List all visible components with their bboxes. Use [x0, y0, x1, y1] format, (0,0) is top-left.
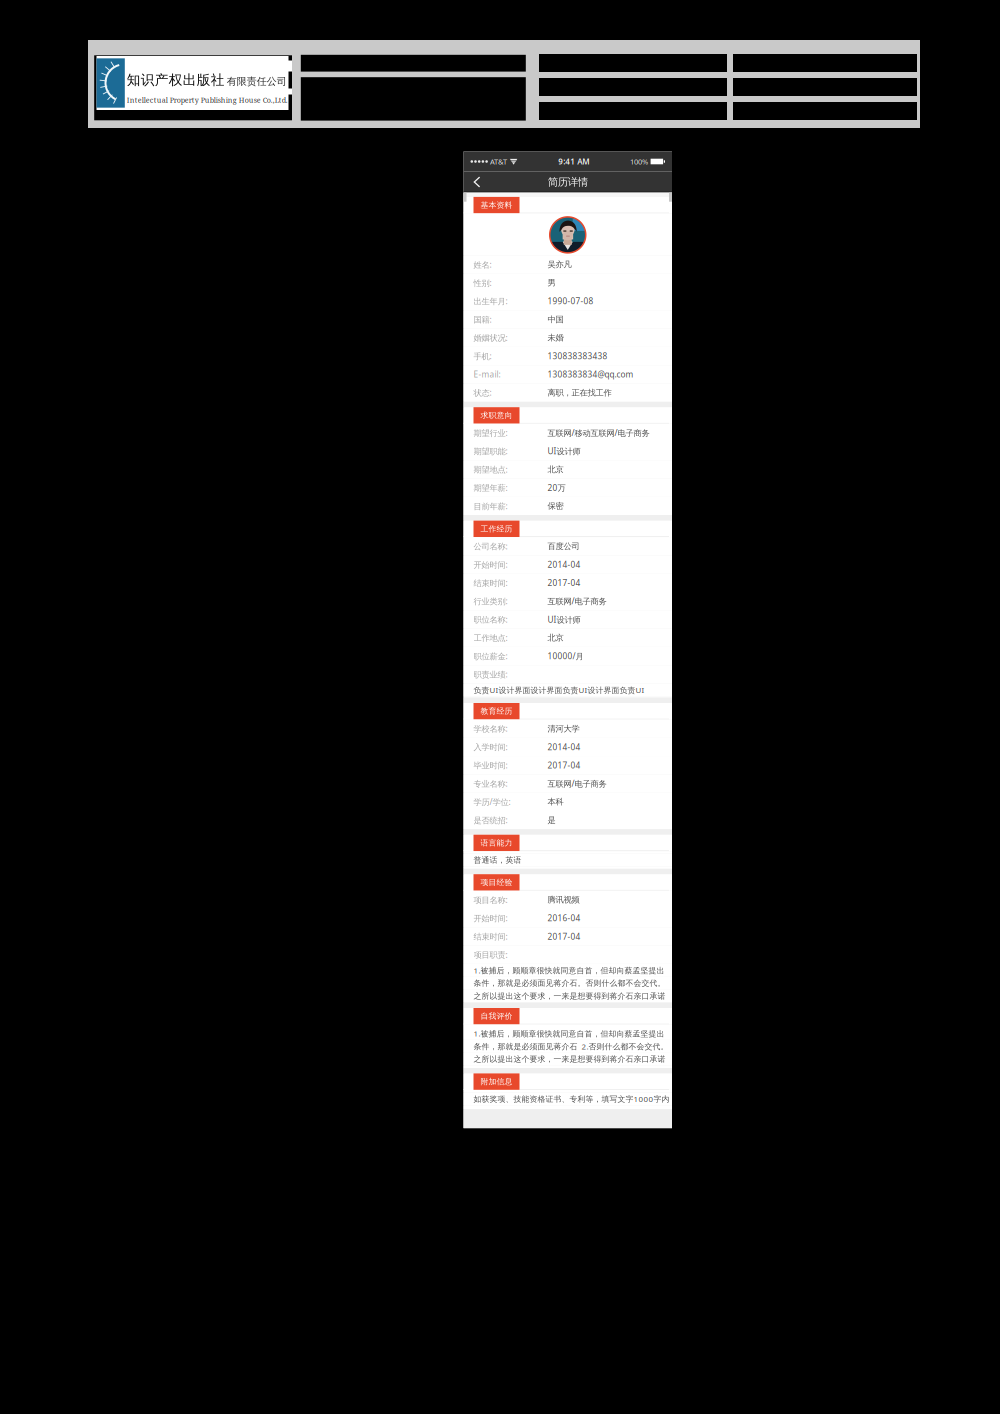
staticText: 结束时间:	[473, 931, 507, 942]
staticText: 项目经验	[480, 877, 512, 887]
staticText: 手机:	[473, 350, 491, 362]
staticText: 语言能力	[480, 838, 512, 848]
staticText: 2017-04	[547, 577, 580, 588]
staticText: 附加信息	[480, 1077, 512, 1087]
staticText: 1308383834@qq.com	[547, 369, 633, 380]
staticText: 吴亦凡	[547, 259, 571, 270]
staticText: UI设计师	[547, 614, 580, 625]
staticText: 基本资料	[480, 200, 512, 210]
staticText: 工作经历	[480, 524, 512, 534]
staticText: 性别:	[473, 277, 491, 288]
staticText: 百度公司	[547, 541, 579, 551]
staticText: AT&T	[488, 156, 507, 167]
staticText: 求职意向	[480, 410, 512, 420]
staticText: UI设计师	[547, 445, 580, 457]
staticText: 1990-07-08	[547, 295, 593, 307]
staticText: 2017-04	[547, 931, 580, 942]
staticText: 学校名称:	[473, 723, 507, 734]
staticText: 状态:	[473, 387, 491, 398]
staticText: 之所以提出这个要求，一来是想要得到蒋介石亲口承诺	[473, 1054, 665, 1064]
staticText: 互联网/移动互联网/电子商务	[547, 427, 649, 438]
staticText: 学历/学位:	[473, 796, 510, 807]
staticText: 公司名称:	[473, 541, 507, 552]
staticText: 期望职能:	[473, 445, 507, 457]
staticText: 行业类别:	[473, 595, 507, 607]
staticText: 开始时间:	[473, 559, 507, 570]
staticText: 期望地点:	[473, 464, 507, 475]
staticText: 1.被捕后，顾顺章很快就同意自首，但却向蔡孟坚提出	[473, 1028, 664, 1039]
staticText: 是否统招:	[473, 814, 507, 826]
staticText: 结束时间:	[473, 577, 507, 588]
staticText: 条件，那就是必须面见蒋介石。否则什么都不会交代。	[473, 978, 665, 988]
staticText: 1.被捕后，顾顺章很快就同意自首，但却向蔡孟坚提出	[473, 965, 664, 976]
staticText: 条件，那就是必须面见蒋介石 2.否则什么都不会交代。	[473, 1041, 668, 1052]
staticText: 简历详情	[548, 175, 588, 188]
staticText: 互联网/电子商务	[547, 595, 606, 607]
staticText: 期望行业:	[473, 427, 507, 438]
staticText: 10000/月	[547, 650, 583, 662]
staticText: 北京	[547, 632, 563, 643]
staticText: 互联网/电子商务	[547, 778, 606, 789]
staticText: 如获奖项、技能资格证书、专利等，填写文字1000字内	[473, 1093, 669, 1104]
staticText: 未婚	[547, 332, 563, 343]
staticText: 2017-04	[547, 760, 580, 771]
staticText: 中国	[547, 314, 563, 325]
staticText: 毕业时间:	[473, 760, 507, 771]
staticText: 专业名称:	[473, 778, 507, 789]
staticText: 20万	[547, 482, 565, 493]
staticText: 本科	[547, 797, 563, 807]
staticText: 2014-04	[547, 741, 580, 753]
staticText: 2014-04	[547, 559, 580, 570]
staticText: 负责UI设计界面设计界面负责UI设计界面负责UI	[473, 685, 644, 695]
staticText: 期望年薪:	[473, 482, 507, 493]
staticText: 国籍:	[473, 314, 491, 325]
staticText: 项目名称:	[473, 894, 507, 905]
staticText: 100%	[630, 156, 648, 167]
staticText: E-mail:	[473, 369, 500, 380]
staticText: 职位薪金:	[473, 650, 507, 662]
staticText: 离职，正在找工作	[547, 387, 611, 398]
staticText: 自我评价	[480, 1011, 512, 1021]
staticText: 职位名称:	[473, 614, 507, 625]
staticText: 有限责任公司	[227, 75, 287, 88]
staticText: 工作地点:	[473, 632, 507, 643]
staticText: 项目职责:	[473, 949, 507, 960]
staticText: 知识产权出版社	[127, 71, 225, 88]
staticText: 职责业绩:	[473, 669, 507, 680]
staticText: 出生年月:	[473, 295, 507, 307]
staticText: 清河大学	[547, 723, 579, 734]
staticText: 是	[547, 815, 555, 825]
staticText: 开始时间:	[473, 912, 507, 924]
staticText: Intellectual Property Publishing House C…	[127, 95, 288, 105]
button[interactable]: Back	[463, 171, 490, 192]
staticText: 婚姻状况:	[473, 332, 507, 343]
staticText: 目前年薪:	[473, 500, 507, 512]
staticText: 入学时间:	[473, 741, 507, 753]
staticText: 普通话，英语	[473, 855, 521, 865]
staticText: 教育经历	[480, 706, 512, 716]
staticText: 2016-04	[547, 912, 580, 924]
staticText: 姓名:	[473, 259, 491, 270]
staticText: 保密	[547, 501, 563, 511]
staticText: 9:41 AM	[558, 156, 589, 167]
staticText: 130838383438	[547, 350, 607, 362]
staticText: 北京	[547, 464, 563, 475]
staticText: 腾讯视频	[547, 895, 579, 905]
staticText: 之所以提出这个要求，一来是想要得到蒋介石亲口承诺	[473, 991, 665, 1001]
staticText: 男	[547, 278, 555, 288]
